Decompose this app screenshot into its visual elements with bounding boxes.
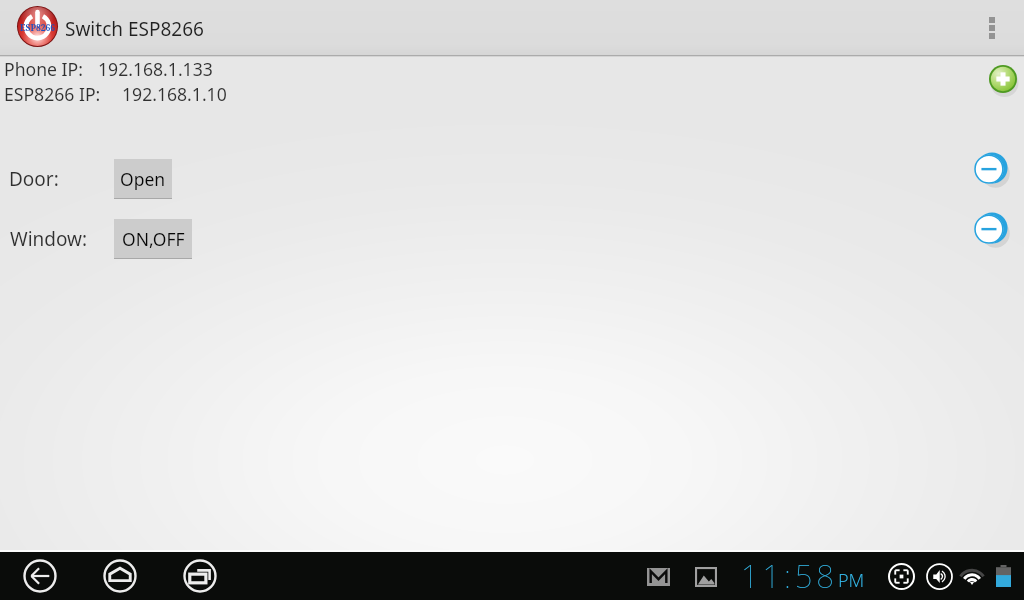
staticText: Door: bbox=[9, 166, 59, 192]
button[interactable]: Battery bbox=[991, 561, 1016, 592]
button[interactable]: Wi-Fi bbox=[955, 561, 991, 592]
staticText: PM bbox=[838, 568, 865, 593]
button[interactable]: Volume bbox=[924, 561, 955, 592]
staticText: 192.168.1.10 bbox=[122, 82, 227, 106]
button[interactable]: Remove window bbox=[975, 213, 1006, 244]
staticText: Switch ESP8266 bbox=[65, 16, 204, 42]
button[interactable]: More options bbox=[968, 0, 1024, 55]
button[interactable]: Take screenshot bbox=[886, 561, 917, 592]
staticText: Open bbox=[120, 167, 166, 191]
staticText: Phone IP: bbox=[4, 57, 83, 81]
staticText: ESP8266 IP: bbox=[4, 82, 101, 106]
button[interactable]: ON,OFF bbox=[114, 219, 192, 259]
button[interactable]: Back bbox=[23, 559, 57, 593]
staticText: 192.168.1.133 bbox=[98, 57, 213, 81]
staticText: 11:58 bbox=[741, 555, 838, 597]
staticText: ESP8266 bbox=[20, 22, 56, 34]
button[interactable]: Remove door bbox=[975, 153, 1006, 184]
button[interactable]: Recent apps bbox=[183, 559, 217, 593]
staticText: ON,OFF bbox=[122, 227, 185, 251]
button[interactable]: Add bbox=[989, 65, 1017, 93]
button[interactable]: Screenshot captured bbox=[690, 562, 722, 592]
staticText: Window: bbox=[10, 226, 88, 252]
button[interactable]: Home bbox=[103, 559, 137, 593]
button[interactable]: Open bbox=[114, 159, 172, 199]
button[interactable]: Gmail notification bbox=[641, 562, 676, 592]
